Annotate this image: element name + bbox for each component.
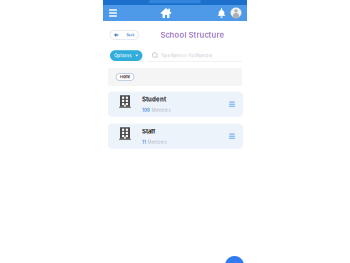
button[interactable]: Back: [110, 31, 138, 39]
staticText: Staff: [142, 128, 155, 135]
staticText: Back: [126, 33, 134, 37]
button[interactable]: Student: [108, 91, 243, 117]
staticText: Student: [142, 96, 166, 103]
staticText: Members: [148, 140, 167, 145]
button[interactable]: Add: [225, 256, 244, 263]
staticText: 11: [142, 140, 146, 145]
button[interactable]: Options: [110, 50, 142, 61]
staticText: Home: [120, 75, 130, 79]
button[interactable]: Menu: [104, 5, 122, 21]
staticText: Type Name or RollNumber: [161, 53, 213, 58]
button[interactable]: Home: [116, 73, 134, 81]
staticText: Members: [152, 108, 171, 113]
button[interactable]: Profile: [229, 5, 242, 21]
staticText: 108: [142, 108, 150, 113]
button[interactable]: Notifications: [215, 5, 227, 21]
button[interactable]: Staff: [108, 123, 243, 149]
staticText: School Structure: [160, 30, 223, 40]
button[interactable]: Home: [159, 5, 173, 21]
staticText: Options: [114, 53, 131, 58]
